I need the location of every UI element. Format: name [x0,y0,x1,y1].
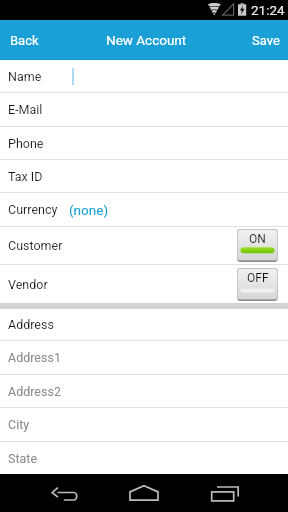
button[interactable]: Address2 [0,375,288,407]
button[interactable]: Phone [0,127,288,159]
staticText: (none) [69,202,109,218]
staticText: Save [252,33,280,48]
button[interactable]: Recent apps [199,475,251,512]
staticText: Back [10,33,39,48]
button[interactable]: Tax ID [0,160,288,192]
staticText: Vendor [8,277,48,292]
button[interactable]: Customer on [237,229,278,262]
button[interactable]: Name [0,60,288,92]
button[interactable]: State [0,442,288,474]
button[interactable]: Address [0,309,288,340]
staticText: Address [8,317,54,332]
staticText: Address1 [8,350,61,365]
staticText: Currency [8,202,58,217]
staticText: Customer [8,238,63,253]
staticText: ON [249,232,266,246]
staticText: 21:24 [251,2,285,18]
staticText: OFF [247,271,269,285]
button[interactable]: Back [39,475,91,512]
button[interactable]: Save [232,20,288,60]
button[interactable]: City [0,408,288,441]
staticText: State [8,451,38,466]
staticText: Tax ID [8,169,43,184]
staticText: Address2 [8,384,61,399]
button[interactable]: Vendor [0,265,288,303]
button[interactable]: Currency [0,193,288,226]
staticText: E-Mail [8,102,43,117]
staticText: City [8,417,30,432]
button[interactable]: Address1 [0,341,288,374]
button[interactable]: Vendor off [237,268,278,301]
button[interactable]: Customer [0,227,288,264]
staticText: Phone [8,136,44,151]
button[interactable]: Home [118,475,170,512]
staticText: New Account [106,32,187,48]
button[interactable]: E-Mail [0,93,288,126]
staticText: Name [8,69,42,84]
button[interactable]: Back [0,20,56,60]
